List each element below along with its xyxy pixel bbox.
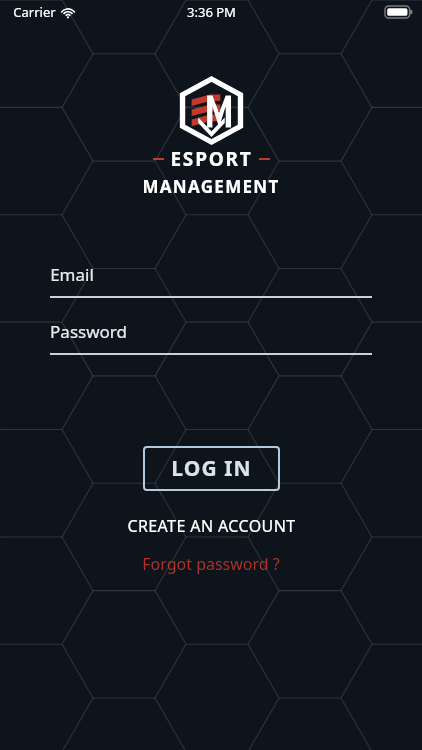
staticText: CREATE AN ACCOUNT xyxy=(127,515,296,537)
button[interactable]: LOG IN xyxy=(143,446,280,491)
staticText: Password xyxy=(50,320,127,343)
staticText: ESPORT xyxy=(170,146,253,172)
button[interactable]: Password xyxy=(50,320,372,355)
staticText: Forgot password ? xyxy=(142,553,280,575)
staticText: Carrier xyxy=(13,3,56,21)
button[interactable]: Email xyxy=(50,263,372,298)
staticText: 3:36 PM xyxy=(187,3,236,21)
button[interactable]: CREATE AN ACCOUNT xyxy=(115,511,308,541)
staticText: LOG IN xyxy=(171,454,252,483)
staticText: Email xyxy=(50,263,94,286)
button[interactable]: Forgot password ? xyxy=(130,549,292,579)
staticText: MANAGEMENT xyxy=(142,175,280,198)
